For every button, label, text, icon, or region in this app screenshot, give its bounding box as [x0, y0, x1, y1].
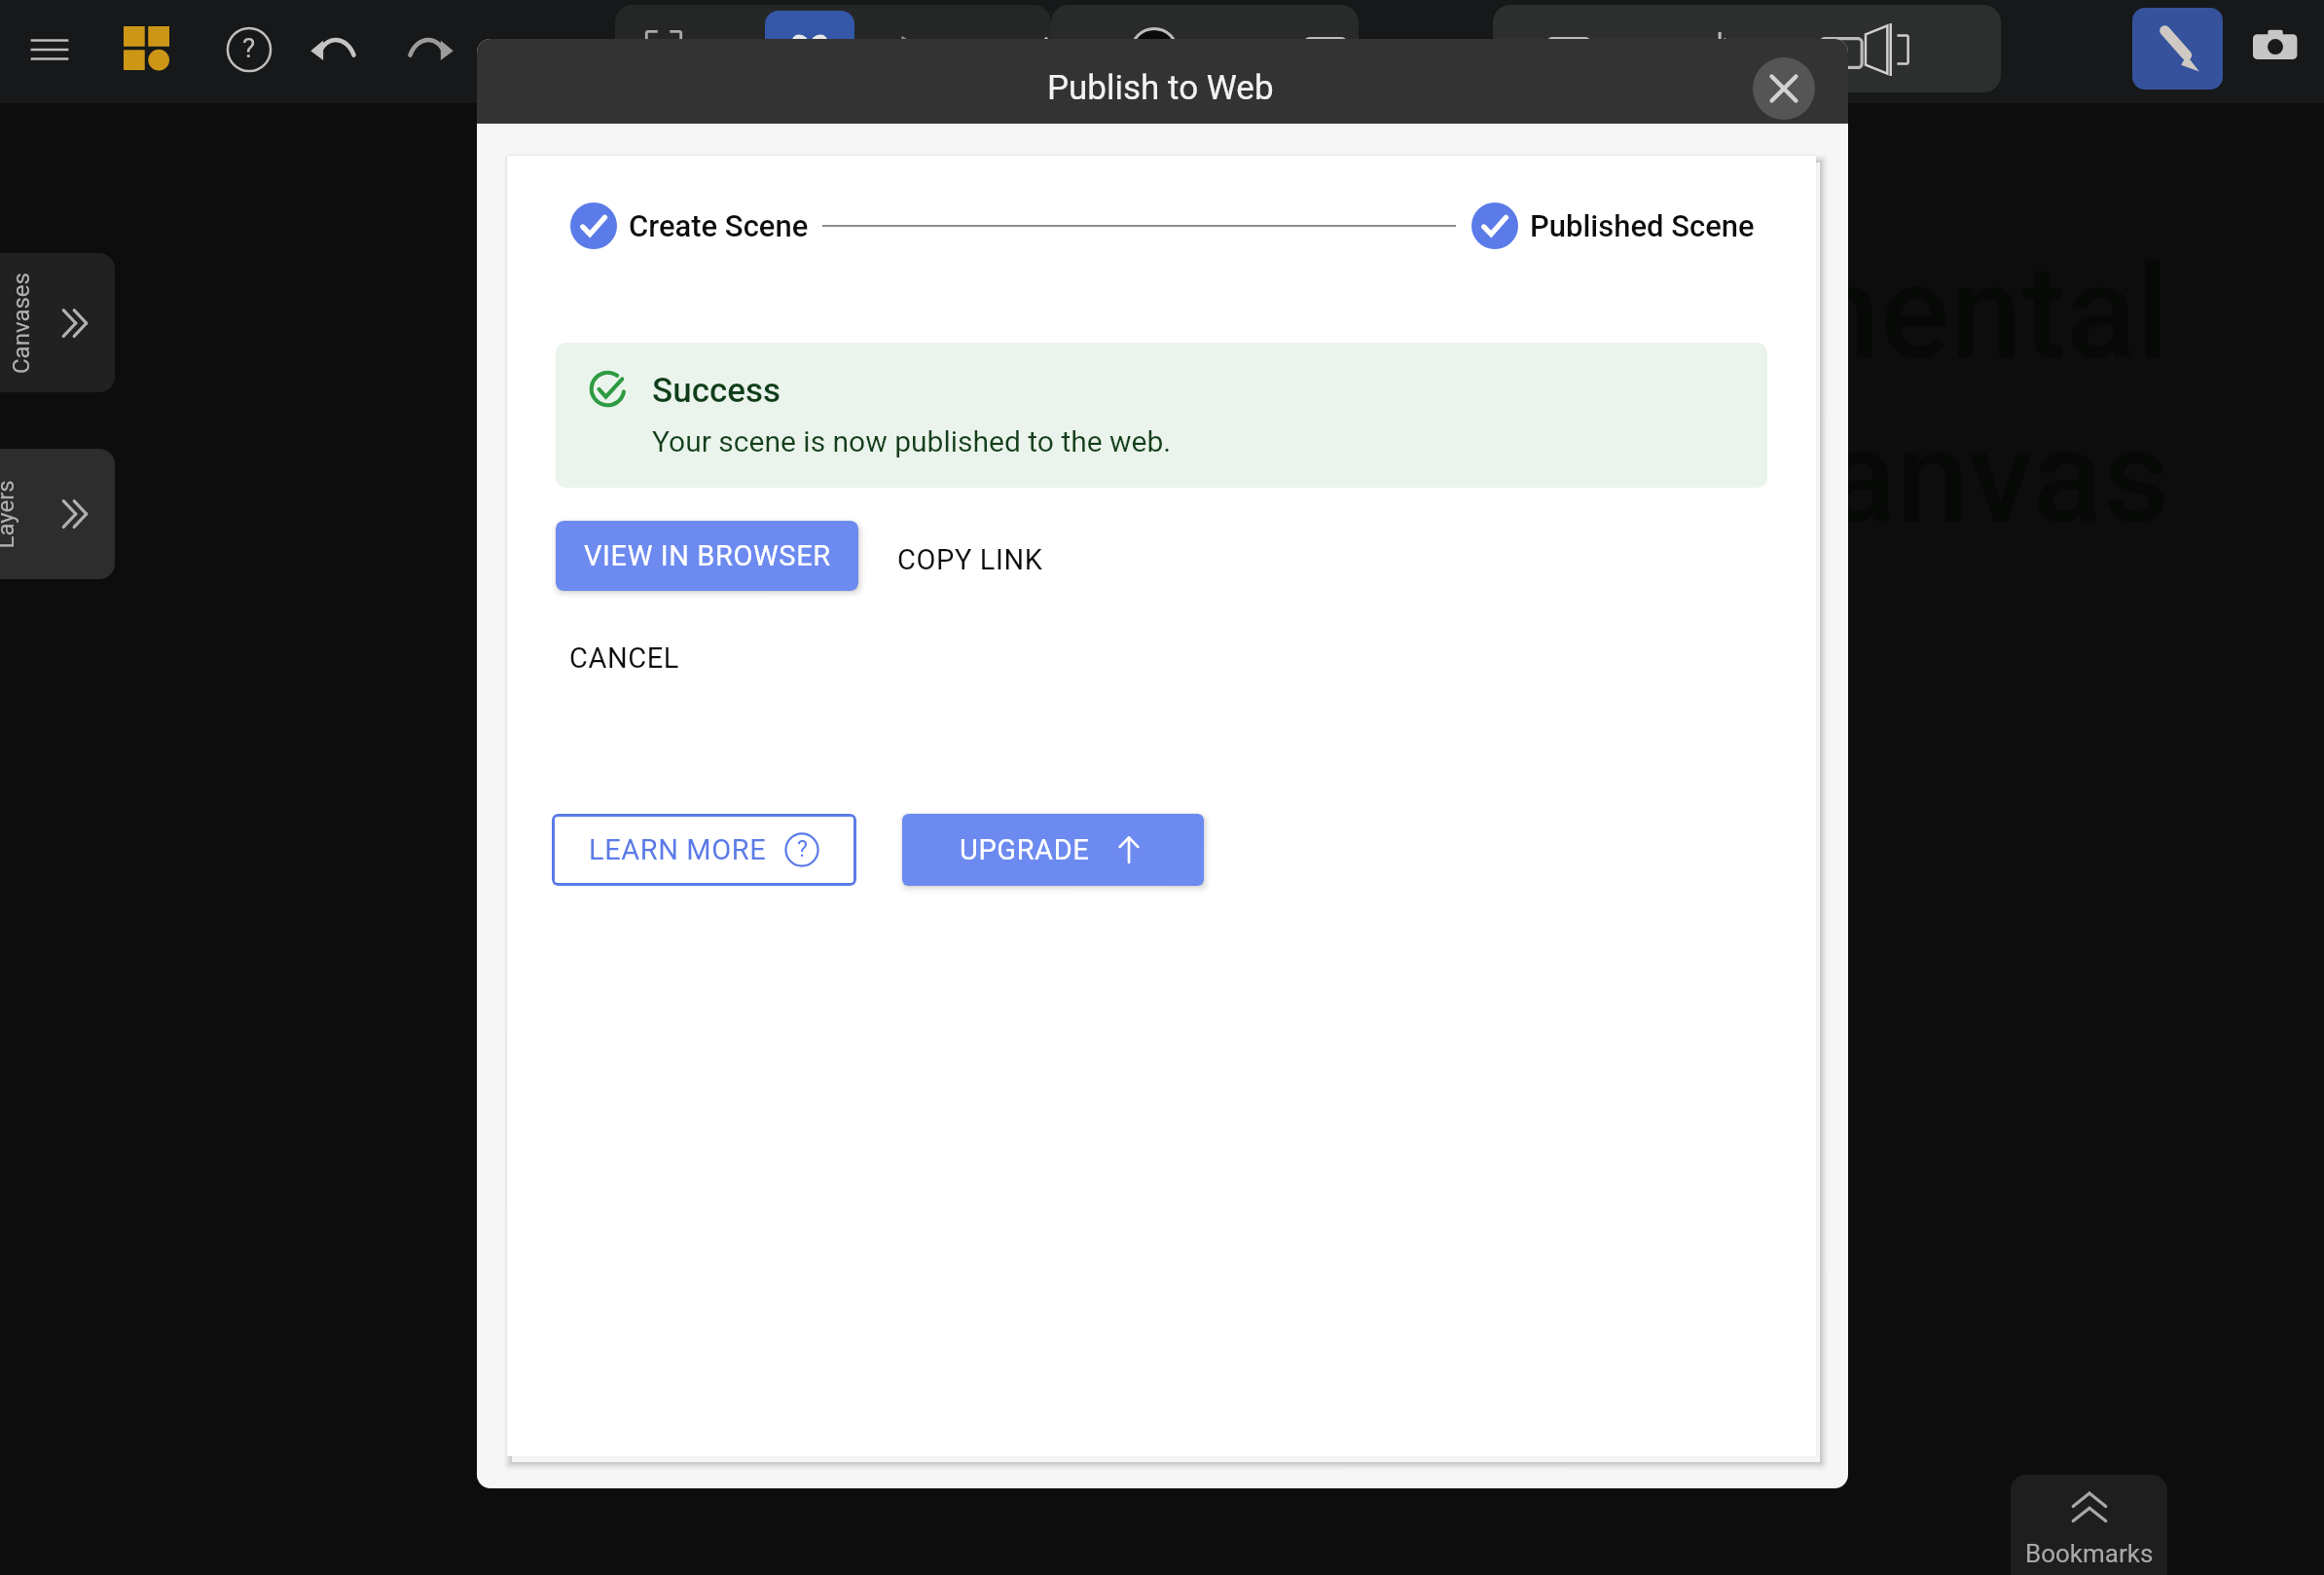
- staticText: ?: [797, 836, 808, 862]
- button[interactable]: Create Scene: [570, 202, 809, 249]
- staticText: canvas: [1758, 401, 2170, 554]
- staticText: ?: [242, 32, 256, 64]
- staticText: Success: [652, 371, 781, 411]
- staticText: Your scene is now published to the web.: [652, 424, 1172, 458]
- button[interactable]: Canvases: [0, 253, 115, 392]
- staticText: Create Scene: [629, 208, 809, 243]
- button[interactable]: COPY LINK: [883, 525, 1058, 595]
- staticText: Layers: [0, 479, 19, 549]
- button[interactable]: CANCEL: [555, 623, 695, 693]
- button[interactable]: Bookmarks: [2011, 1475, 2167, 1575]
- staticText: Publish to Web: [1047, 68, 1274, 108]
- button[interactable]: Menu: [17, 17, 83, 83]
- button[interactable]: Path tool: [1004, 27, 1051, 74]
- button[interactable]: Help: [204, 5, 294, 94]
- button[interactable]: UPGRADE: [902, 814, 1204, 886]
- staticText: UPGRADE: [960, 833, 1090, 866]
- button[interactable]: Draw tool: [765, 11, 854, 87]
- button[interactable]: Brush: [2132, 8, 2223, 90]
- button[interactable]: Camera: [2244, 18, 2306, 80]
- button[interactable]: LEARN MORE: [552, 814, 856, 886]
- staticText: Bookmarks: [2025, 1539, 2154, 1568]
- button[interactable]: Frame tool: [627, 11, 701, 87]
- staticText: LEARN MORE: [589, 833, 767, 866]
- button[interactable]: Play: [890, 27, 936, 74]
- button[interactable]: VIEW IN BROWSER: [556, 521, 858, 591]
- staticText: CANCEL: [569, 641, 680, 675]
- button[interactable]: Published Scene: [1471, 202, 1755, 249]
- staticText: mental: [1766, 237, 2170, 389]
- staticText: Canvases: [8, 273, 35, 374]
- button[interactable]: Layers: [0, 449, 115, 579]
- staticText: COPY LINK: [897, 543, 1043, 576]
- staticText: VIEW IN BROWSER: [584, 539, 831, 572]
- button[interactable]: Undo: [308, 21, 360, 74]
- button[interactable]: Close: [1753, 57, 1815, 120]
- staticText: Published Scene: [1530, 208, 1755, 243]
- button[interactable]: Redo: [404, 21, 456, 74]
